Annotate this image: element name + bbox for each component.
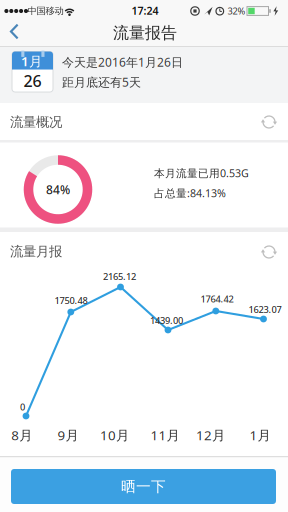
staticText: 32% (227, 5, 245, 17)
staticText: 本月流量已用0.53G (154, 166, 249, 180)
staticText: 8月 (11, 426, 32, 444)
staticText: 0 (20, 401, 25, 413)
staticText: 中国移动 (27, 5, 63, 17)
staticText: 1750.48 (54, 294, 87, 307)
button[interactable]: Back (2, 21, 26, 41)
staticText: 晒一下 (121, 477, 166, 495)
staticText: 1623.07 (248, 303, 281, 316)
staticText: 占总量:84.13% (154, 186, 226, 200)
staticText: 26 (23, 70, 41, 91)
staticText: 10月 (100, 426, 129, 444)
button[interactable]: 刷新 (256, 109, 282, 135)
staticText: 流量月报 (10, 243, 62, 260)
staticText: 12月 (196, 426, 225, 444)
staticText: 17:24 (131, 3, 158, 18)
staticText: 距月底还有5天 (62, 74, 141, 90)
staticText: 流量报告 (113, 23, 177, 43)
button[interactable]: 晒一下 (11, 469, 276, 504)
button[interactable]: 刷新 (256, 239, 282, 265)
staticText: 11月 (150, 426, 179, 444)
staticText: 9月 (57, 426, 78, 444)
staticText: 2165.12 (103, 270, 136, 283)
staticText: 1月 (249, 426, 270, 444)
staticText: 1764.42 (200, 293, 233, 305)
staticText: 1月 (21, 52, 42, 70)
staticText: 流量概况 (10, 114, 62, 130)
staticText: 今天是2016年1月26日 (62, 54, 183, 70)
staticText: 1439.00 (150, 314, 183, 327)
staticText: 84% (46, 181, 70, 197)
